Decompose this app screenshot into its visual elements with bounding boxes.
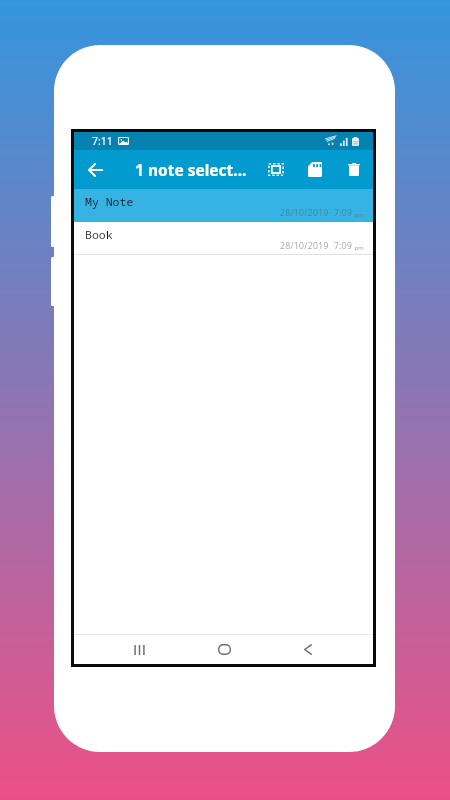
staticText: 28/10/2019 7:09 [280,207,353,219]
button[interactable]: Recent apps [106,635,172,664]
button[interactable]: Home [191,635,257,664]
button[interactable]: Back [74,150,117,189]
button[interactable]: My Note [74,189,373,222]
staticText: pm [353,211,364,219]
staticText: pm [353,244,364,252]
staticText: 28/10/2019 7:09 [280,240,353,252]
button[interactable]: Select all [256,150,295,189]
staticText: Book [85,227,113,243]
button[interactable]: Book [74,222,373,255]
button[interactable]: Delete [334,150,373,189]
button[interactable]: Back [275,635,341,664]
staticText: 1 note select... [135,159,247,180]
button[interactable]: Save to SD card [295,150,334,189]
staticText: 7:11 [92,134,113,148]
staticText: My Note [85,194,134,210]
